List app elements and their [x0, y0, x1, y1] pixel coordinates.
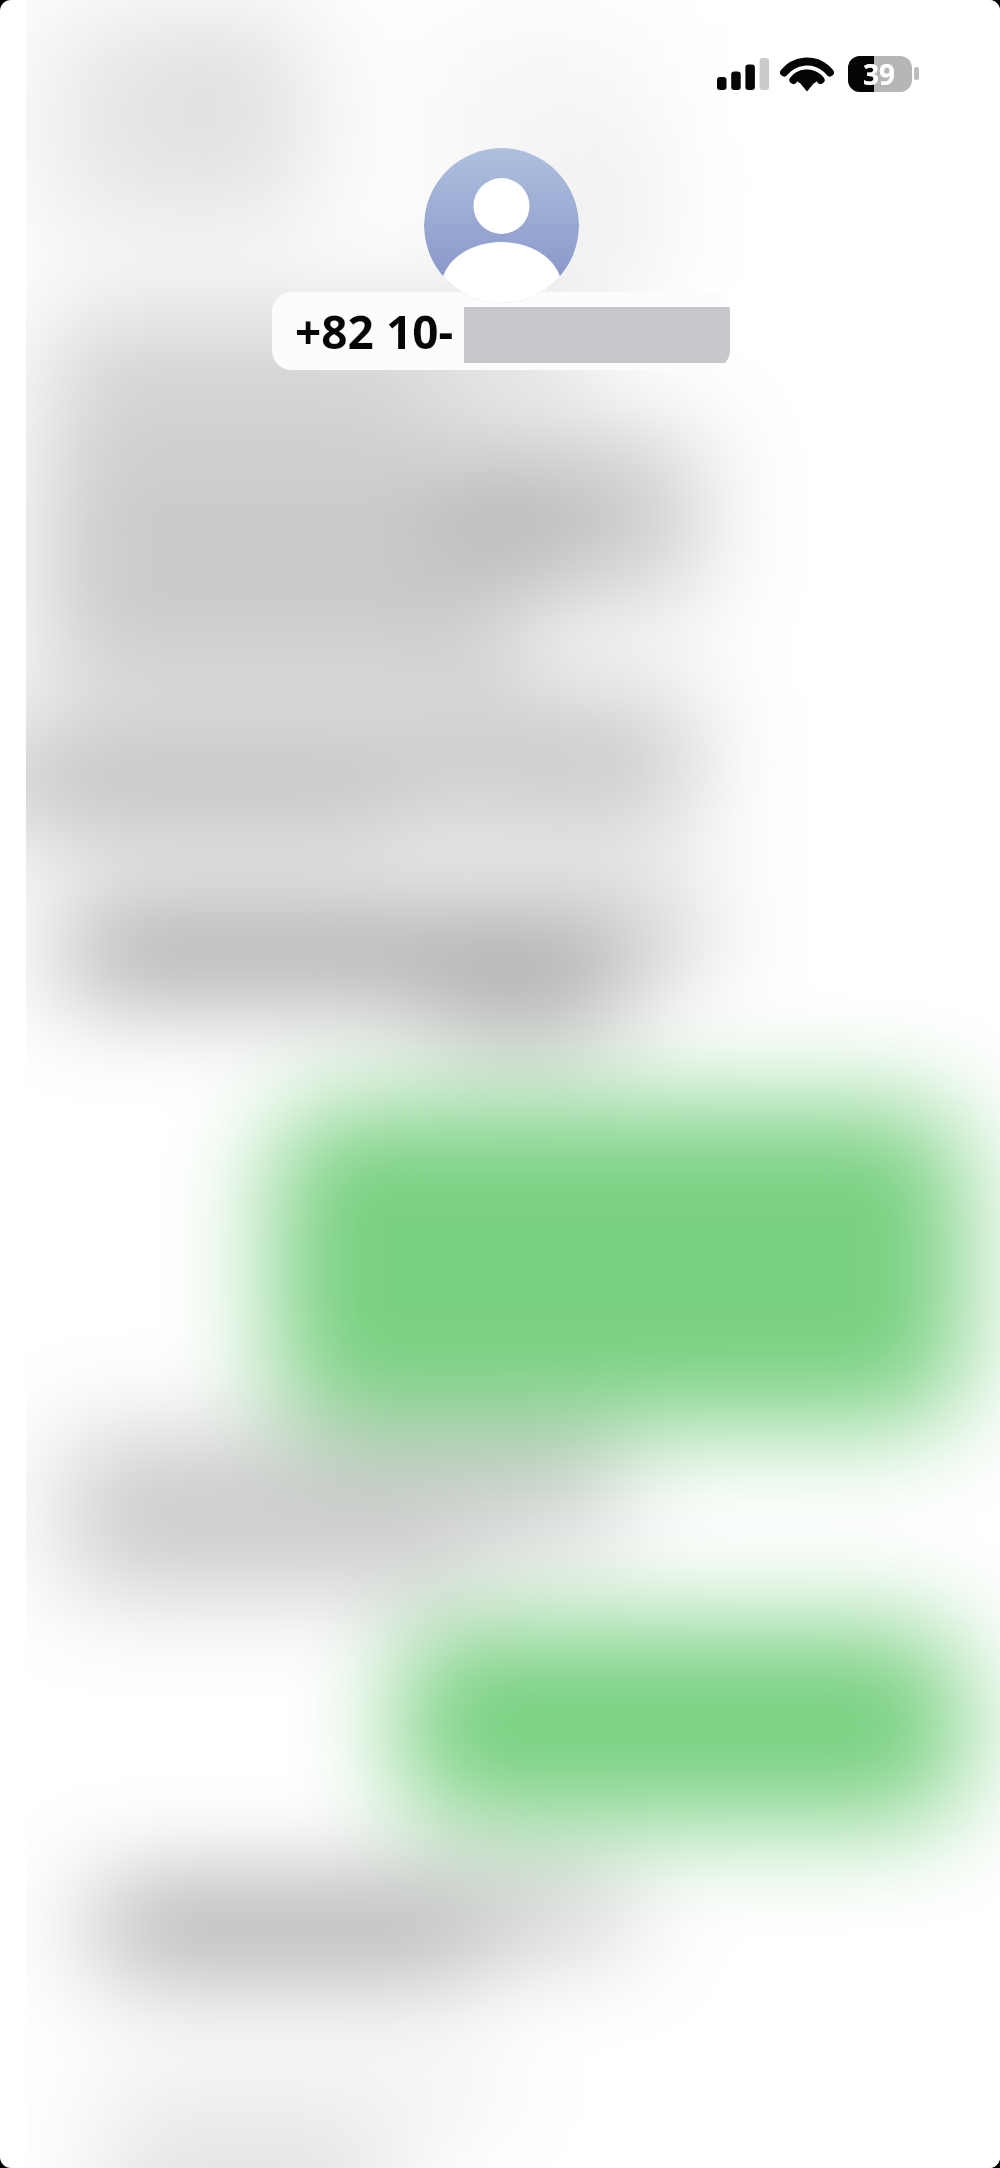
button[interactable]: +82 10- — [272, 292, 730, 370]
button[interactable]: Contact photo — [424, 148, 579, 303]
staticText: 39 — [863, 56, 896, 91]
staticText: +82 10- — [295, 300, 454, 363]
